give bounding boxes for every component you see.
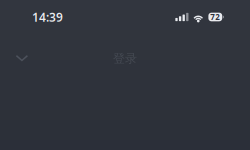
staticText: 14:39 [32,9,63,25]
staticText: 登录 [113,51,137,66]
button[interactable]: Dismiss [5,32,39,80]
staticText: 72 [210,12,220,22]
